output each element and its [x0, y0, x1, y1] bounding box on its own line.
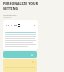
- button[interactable]: Options: [3, 59, 37, 72]
- staticText: Preferences: [3, 13, 17, 16]
- staticText: Account: [3, 16, 12, 19]
- button[interactable]: [3, 20, 38, 50]
- staticText: PERSONALIZE YOUR: [3, 1, 39, 6]
- button[interactable]: Options: [3, 51, 37, 58]
- staticText: SETTING: [3, 6, 19, 11]
